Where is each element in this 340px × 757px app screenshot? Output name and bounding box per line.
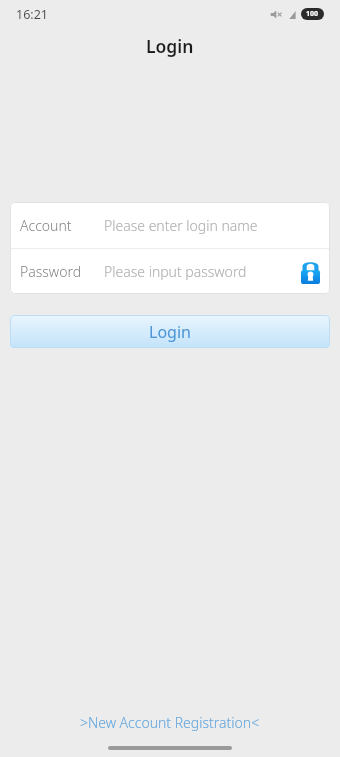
staticText: 16:21 (16, 6, 48, 23)
staticText: 100 (306, 9, 319, 19)
staticText: Account (20, 216, 72, 235)
button[interactable]: Login (10, 315, 330, 348)
staticText: Please input password (104, 262, 247, 281)
button[interactable]: >New Account Registration< (68, 707, 272, 738)
staticText: Login (149, 321, 191, 343)
button[interactable]: Account (10, 202, 330, 248)
staticText: Password (20, 262, 82, 281)
staticText: >New Account Registration< (80, 713, 260, 732)
button[interactable]: Show password (301, 260, 320, 284)
staticText: Please enter login name (104, 216, 258, 235)
staticText: Login (146, 34, 194, 58)
button[interactable]: Password (10, 249, 330, 294)
